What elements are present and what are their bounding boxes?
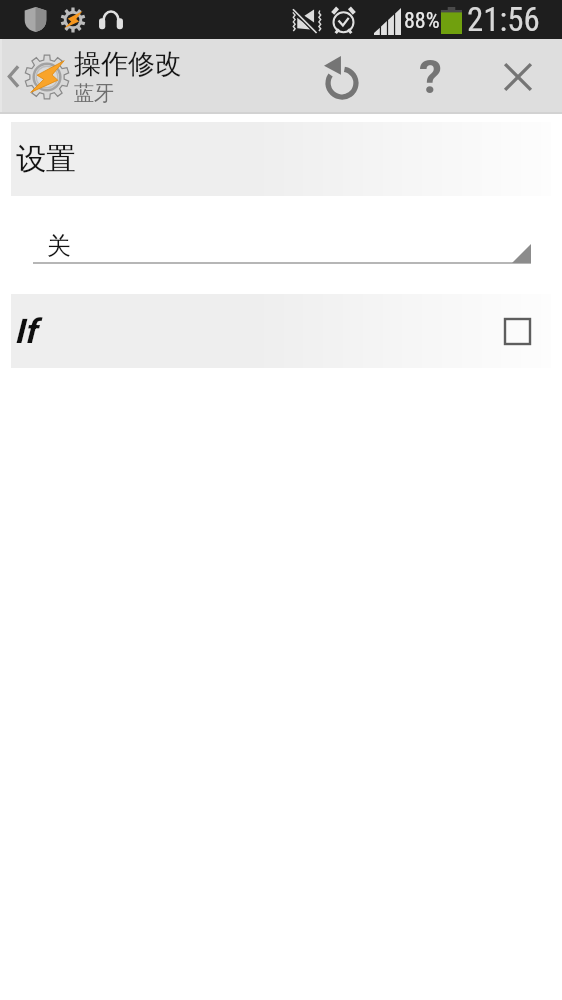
button[interactable]: Reset [298, 39, 386, 114]
button[interactable]: Close [474, 39, 562, 114]
button[interactable]: Back [0, 39, 24, 114]
staticText: 88% [404, 8, 440, 34]
button[interactable]: If [11, 294, 551, 368]
staticText: 关 [47, 231, 71, 261]
staticText: If [14, 311, 37, 351]
staticText: 21:56 [467, 0, 540, 39]
staticText: 蓝牙 [74, 81, 114, 106]
button[interactable]: 关 [33, 213, 531, 263]
button[interactable]: Help [386, 39, 474, 114]
staticText: 操作修改 [74, 47, 182, 81]
button[interactable]: 设置 [11, 122, 551, 196]
staticText: ? [419, 50, 442, 104]
staticText: 设置 [16, 140, 76, 178]
